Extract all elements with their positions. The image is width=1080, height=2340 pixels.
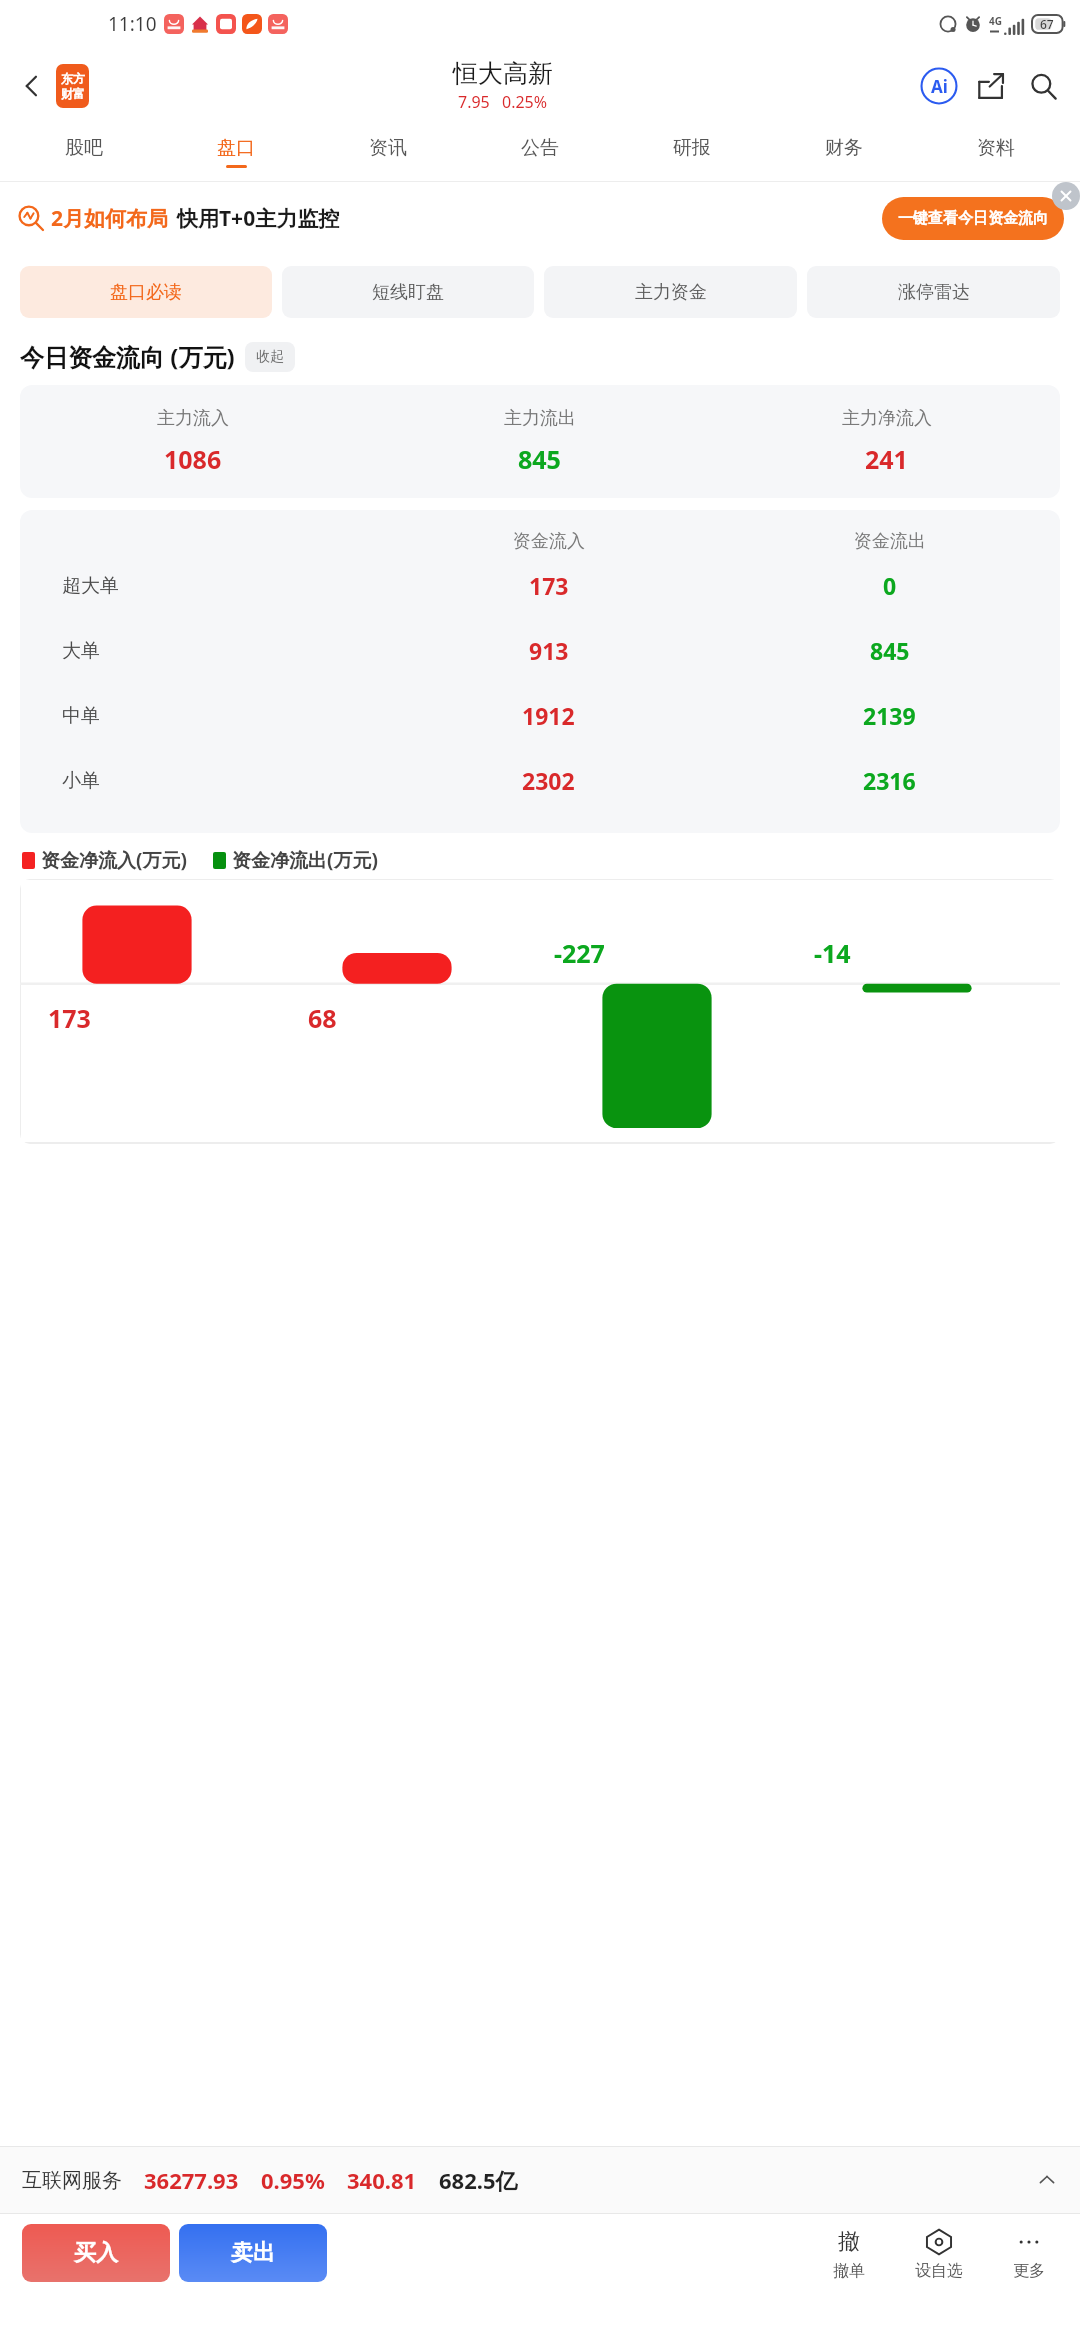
staticText: 买入 — [74, 2239, 118, 2267]
staticText: 大单 — [62, 639, 100, 663]
staticText: 2139 — [863, 700, 916, 731]
staticText: 资金净流入(万元) — [41, 847, 187, 873]
staticText: 主力净流入 — [842, 407, 932, 430]
button[interactable]: 买入 — [22, 2224, 170, 2282]
staticText: 恒大高新 — [453, 58, 553, 89]
staticText: -227 — [554, 936, 605, 970]
staticText: 财富 — [61, 86, 85, 101]
staticText: 0.95% — [261, 2165, 325, 2195]
button[interactable]: 盘口必读 — [20, 266, 272, 318]
button[interactable]: 盘口 — [160, 123, 312, 181]
staticText: 173 — [48, 1001, 91, 1035]
staticText: 小单 — [62, 769, 100, 793]
button[interactable]: 收起 — [245, 342, 295, 372]
staticText: 更多 — [1013, 2261, 1045, 2281]
button[interactable]: 股吧 — [8, 123, 160, 181]
button[interactable]: Close ad — [1052, 182, 1080, 210]
button[interactable]: 财务 — [768, 123, 920, 181]
button[interactable]: 卖出 — [179, 2224, 327, 2282]
staticText: 资讯 — [369, 136, 407, 160]
button[interactable]: 短线盯盘 — [282, 266, 534, 318]
staticText: 东方 — [61, 71, 85, 86]
staticText: 913 — [529, 635, 569, 666]
staticText: 68 — [308, 1001, 337, 1035]
button[interactable]: 撤 — [814, 2224, 884, 2283]
staticText: 主力流入 — [157, 407, 229, 430]
button[interactable]: 资料 — [920, 123, 1072, 181]
staticText: 845 — [518, 442, 561, 476]
staticText: 682.5亿 — [439, 2165, 518, 2195]
staticText: 撤单 — [833, 2261, 865, 2281]
button[interactable]: 公告 — [464, 123, 616, 181]
staticText: 撤 — [838, 2228, 860, 2256]
staticText: 0 — [883, 570, 897, 601]
staticText: 资料 — [977, 136, 1015, 160]
staticText: 互联网服务 — [22, 2168, 122, 2193]
staticText: 资金流入 — [513, 530, 585, 553]
staticText: 股吧 — [65, 136, 103, 160]
staticText: 卖出 — [231, 2239, 275, 2267]
staticText: 收起 — [256, 348, 284, 366]
staticText: 11:10 — [108, 11, 157, 37]
button[interactable]: 设自选 — [904, 2224, 974, 2283]
button[interactable]: 互联网服务 — [0, 2147, 1080, 2213]
staticText: 公告 — [521, 136, 559, 160]
button[interactable]: 一键查看今日资金流向 — [882, 197, 1064, 240]
staticText: 财务 — [825, 136, 863, 160]
staticText: 173 — [529, 570, 569, 601]
button[interactable]: Back — [10, 64, 54, 108]
button[interactable]: 研报 — [616, 123, 768, 181]
staticText: 4G — [989, 14, 1002, 28]
staticText: 主力流出 — [504, 407, 576, 430]
staticText: 一键查看今日资金流向 — [898, 209, 1048, 228]
staticText: 340.81 — [347, 2165, 417, 2195]
staticText: 超大单 — [62, 574, 119, 598]
staticText: 研报 — [673, 136, 711, 160]
staticText: 盘口必读 — [110, 281, 182, 304]
staticText: 1086 — [164, 442, 222, 476]
button[interactable]: 资讯 — [312, 123, 464, 181]
button[interactable]: 东方财富 — [56, 64, 89, 108]
staticText: 7.95 — [458, 91, 490, 113]
staticText: 今日资金流向 (万元) — [20, 340, 235, 373]
button[interactable]: AI assistant — [918, 65, 960, 107]
staticText: 中单 — [62, 704, 100, 728]
staticText: 盘口 — [217, 136, 255, 160]
button[interactable]: 主力资金 — [544, 266, 797, 318]
staticText: 短线盯盘 — [372, 281, 444, 304]
button[interactable]: Share — [970, 65, 1012, 107]
staticText: 0.25% — [502, 91, 548, 113]
staticText: 2月如何布局 — [51, 204, 169, 233]
staticText: 2316 — [863, 765, 916, 796]
staticText: 2302 — [522, 765, 575, 796]
staticText: 67 — [1040, 16, 1054, 32]
button[interactable]: Search — [1022, 65, 1064, 107]
staticText: 845 — [870, 635, 910, 666]
staticText: 241 — [865, 442, 908, 476]
staticText: 涨停雷达 — [898, 281, 970, 304]
staticText: 36277.93 — [144, 2165, 239, 2195]
button[interactable]: 更多 — [994, 2224, 1064, 2283]
staticText: -14 — [814, 936, 851, 970]
staticText: 设自选 — [915, 2261, 963, 2281]
staticText: 主力资金 — [635, 281, 707, 304]
staticText: 快用T+0主力监控 — [177, 204, 340, 233]
button[interactable]: 涨停雷达 — [807, 266, 1060, 318]
staticText: 资金流出 — [854, 530, 926, 553]
staticText: 资金净流出(万元) — [232, 847, 378, 873]
staticText: 1912 — [522, 700, 575, 731]
staticText: Ai — [931, 75, 948, 98]
